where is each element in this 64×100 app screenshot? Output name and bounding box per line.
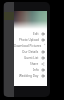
staticText: Guest List [24, 56, 39, 60]
other: icon [41, 56, 45, 60]
other: icon [41, 32, 45, 36]
staticText: Edit [33, 32, 39, 36]
button[interactable]: Photo Upload [14, 37, 47, 43]
staticText: Wedding Day [19, 74, 39, 78]
button[interactable]: Guest List [14, 55, 47, 61]
other: icon [41, 62, 45, 66]
button[interactable]: Edit [14, 31, 47, 37]
other: icon [41, 38, 45, 42]
other: icon [44, 44, 45, 48]
staticText: Info [33, 68, 39, 72]
staticText: Our Details [22, 50, 39, 54]
button[interactable]: Info [14, 67, 47, 73]
button[interactable]: Wedding Day [14, 73, 47, 79]
button[interactable]: Share [14, 61, 47, 67]
staticText: Photo Upload [19, 38, 39, 42]
staticText: Download Pictures [14, 44, 42, 48]
other: icon [41, 74, 45, 78]
button[interactable]: Download Pictures [14, 43, 47, 49]
other: icon [41, 68, 45, 72]
button[interactable]: Our Details [14, 49, 47, 55]
other: icon [41, 50, 45, 54]
staticText: Share [30, 62, 39, 66]
